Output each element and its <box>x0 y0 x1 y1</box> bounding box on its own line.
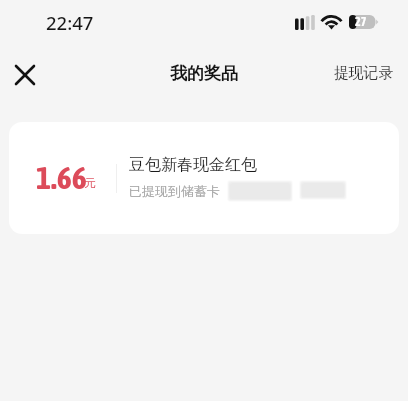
button[interactable]: 1.66 <box>9 122 399 234</box>
button[interactable]: 提现记录 <box>328 56 400 91</box>
staticText: 已提现到储蓄卡 <box>129 183 220 199</box>
staticText: 1.66 <box>36 159 87 196</box>
staticText: 27 <box>355 15 367 29</box>
staticText: 我的奖品 <box>170 63 238 84</box>
staticText: 22:47 <box>46 10 94 35</box>
staticText: 豆包新春现金红包 <box>129 155 257 175</box>
staticText: 元 <box>84 176 96 190</box>
staticText: 提现记录 <box>334 64 394 83</box>
button[interactable]: Close <box>5 55 45 95</box>
